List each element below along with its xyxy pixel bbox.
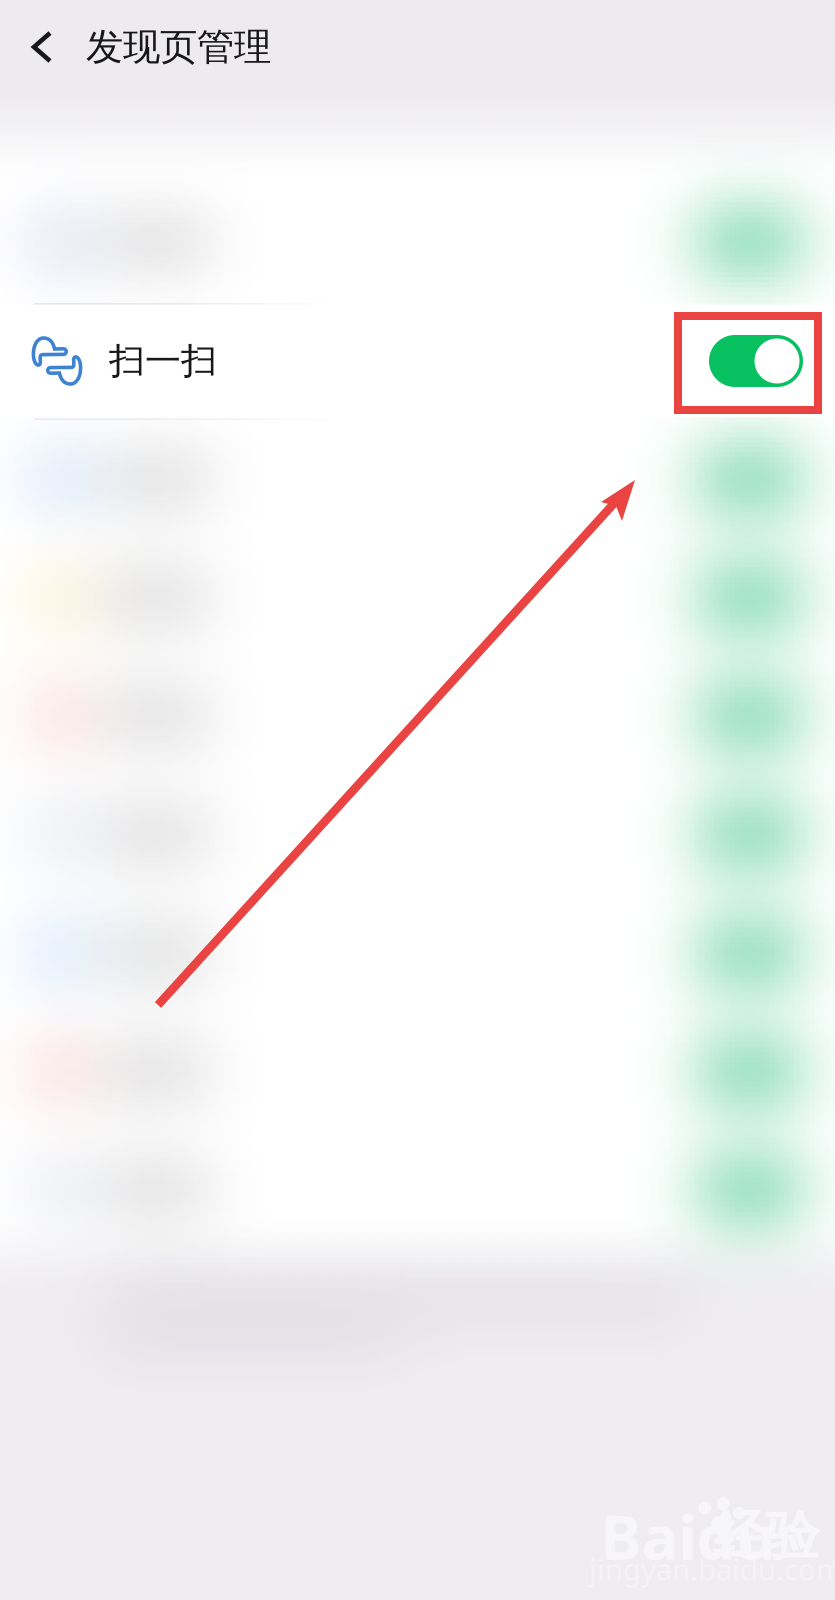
staticText: jingyan.baidu.com <box>589 1549 835 1588</box>
button[interactable]: 扫一扫 <box>0 305 835 417</box>
staticText: Baidu <box>600 1495 775 1577</box>
button[interactable]: Back <box>0 0 86 94</box>
staticText: 经验 <box>713 1503 819 1569</box>
staticText: 扫一扫 <box>109 339 217 383</box>
staticText: 发现页管理 <box>86 24 271 70</box>
